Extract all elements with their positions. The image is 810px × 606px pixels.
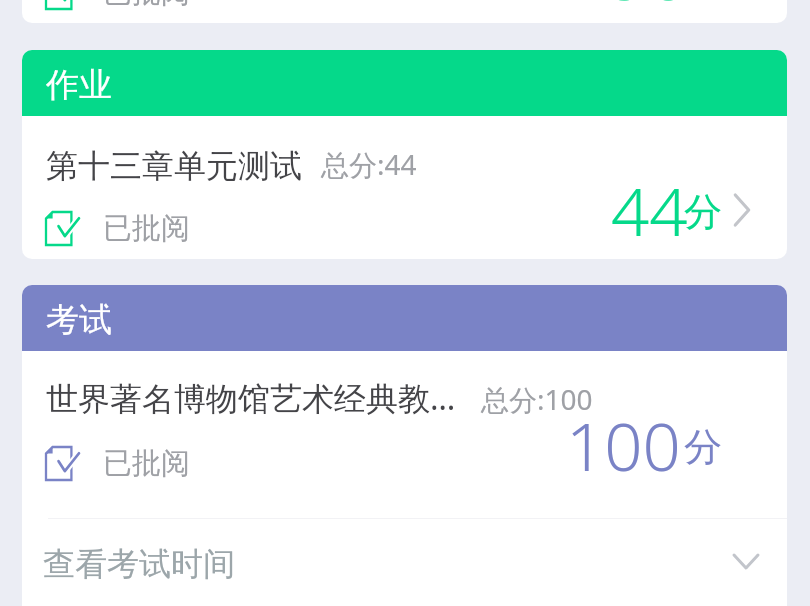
button[interactable]: 第十二章单元测试	[22, 0, 787, 23]
staticText: 总分:100	[481, 380, 593, 418]
other: 查看详情	[734, 195, 750, 225]
staticText: 已批阅	[103, 0, 190, 11]
staticText: 查看考试时间	[43, 544, 235, 584]
staticText: 已批阅	[103, 445, 190, 482]
staticText: 98	[611, 0, 688, 19]
other: 展开	[734, 555, 758, 568]
staticText: 世界著名博物馆艺术经典教…	[46, 376, 456, 420]
button[interactable]: 世界著名博物馆艺术经典教…	[22, 351, 787, 518]
button[interactable]: 作业	[22, 50, 787, 116]
staticText: 分	[684, 423, 722, 471]
staticText: 分	[684, 188, 722, 236]
button[interactable]: 查看考试时间	[22, 519, 787, 606]
staticText: 作业	[46, 64, 112, 106]
staticText: 已批阅	[103, 210, 190, 247]
staticText: 第十三章单元测试	[46, 146, 302, 186]
staticText: 44	[611, 164, 688, 255]
staticText: 100	[566, 399, 681, 490]
staticText: 总分:44	[321, 145, 417, 183]
button[interactable]: 第十三章单元测试	[22, 116, 787, 259]
staticText: 考试	[46, 299, 112, 341]
button[interactable]: 考试	[22, 285, 787, 351]
